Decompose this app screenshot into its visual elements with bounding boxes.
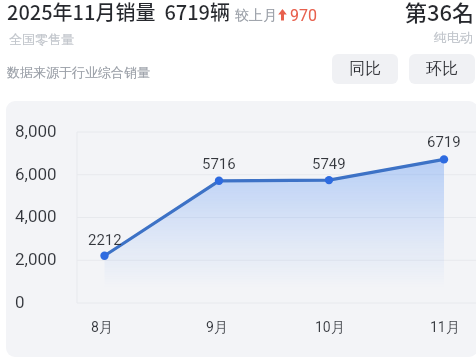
staticText: 数据来源于行业综合销量 [7,64,150,80]
button[interactable]: 环比 [409,54,475,84]
staticText: 全国零售量 [9,31,74,47]
staticText: 6719 [427,133,461,151]
staticText: 8,000 [15,121,57,141]
staticText: 11月 [430,319,460,337]
staticText: 10月 [315,319,345,337]
staticText: 5749 [312,155,346,173]
staticText: 纯电动 [434,29,473,45]
staticText: 0 [15,292,25,312]
staticText: 9月 [206,319,228,337]
staticText: 6,000 [15,164,57,184]
staticText: 环比 [426,59,458,79]
staticText: 5716 [202,155,236,173]
staticText: 2212 [88,231,122,249]
staticText: 同比 [349,59,381,79]
staticText: 970 [290,6,317,25]
staticText: 2,000 [15,249,57,269]
staticText: 第36名 [405,0,475,27]
staticText: 4,000 [15,206,57,226]
staticText: 8月 [91,319,113,337]
staticText: 2025年11月销量 6719辆 [7,0,230,26]
staticText: 较上月 [235,7,277,25]
button[interactable]: 同比 [332,54,398,84]
